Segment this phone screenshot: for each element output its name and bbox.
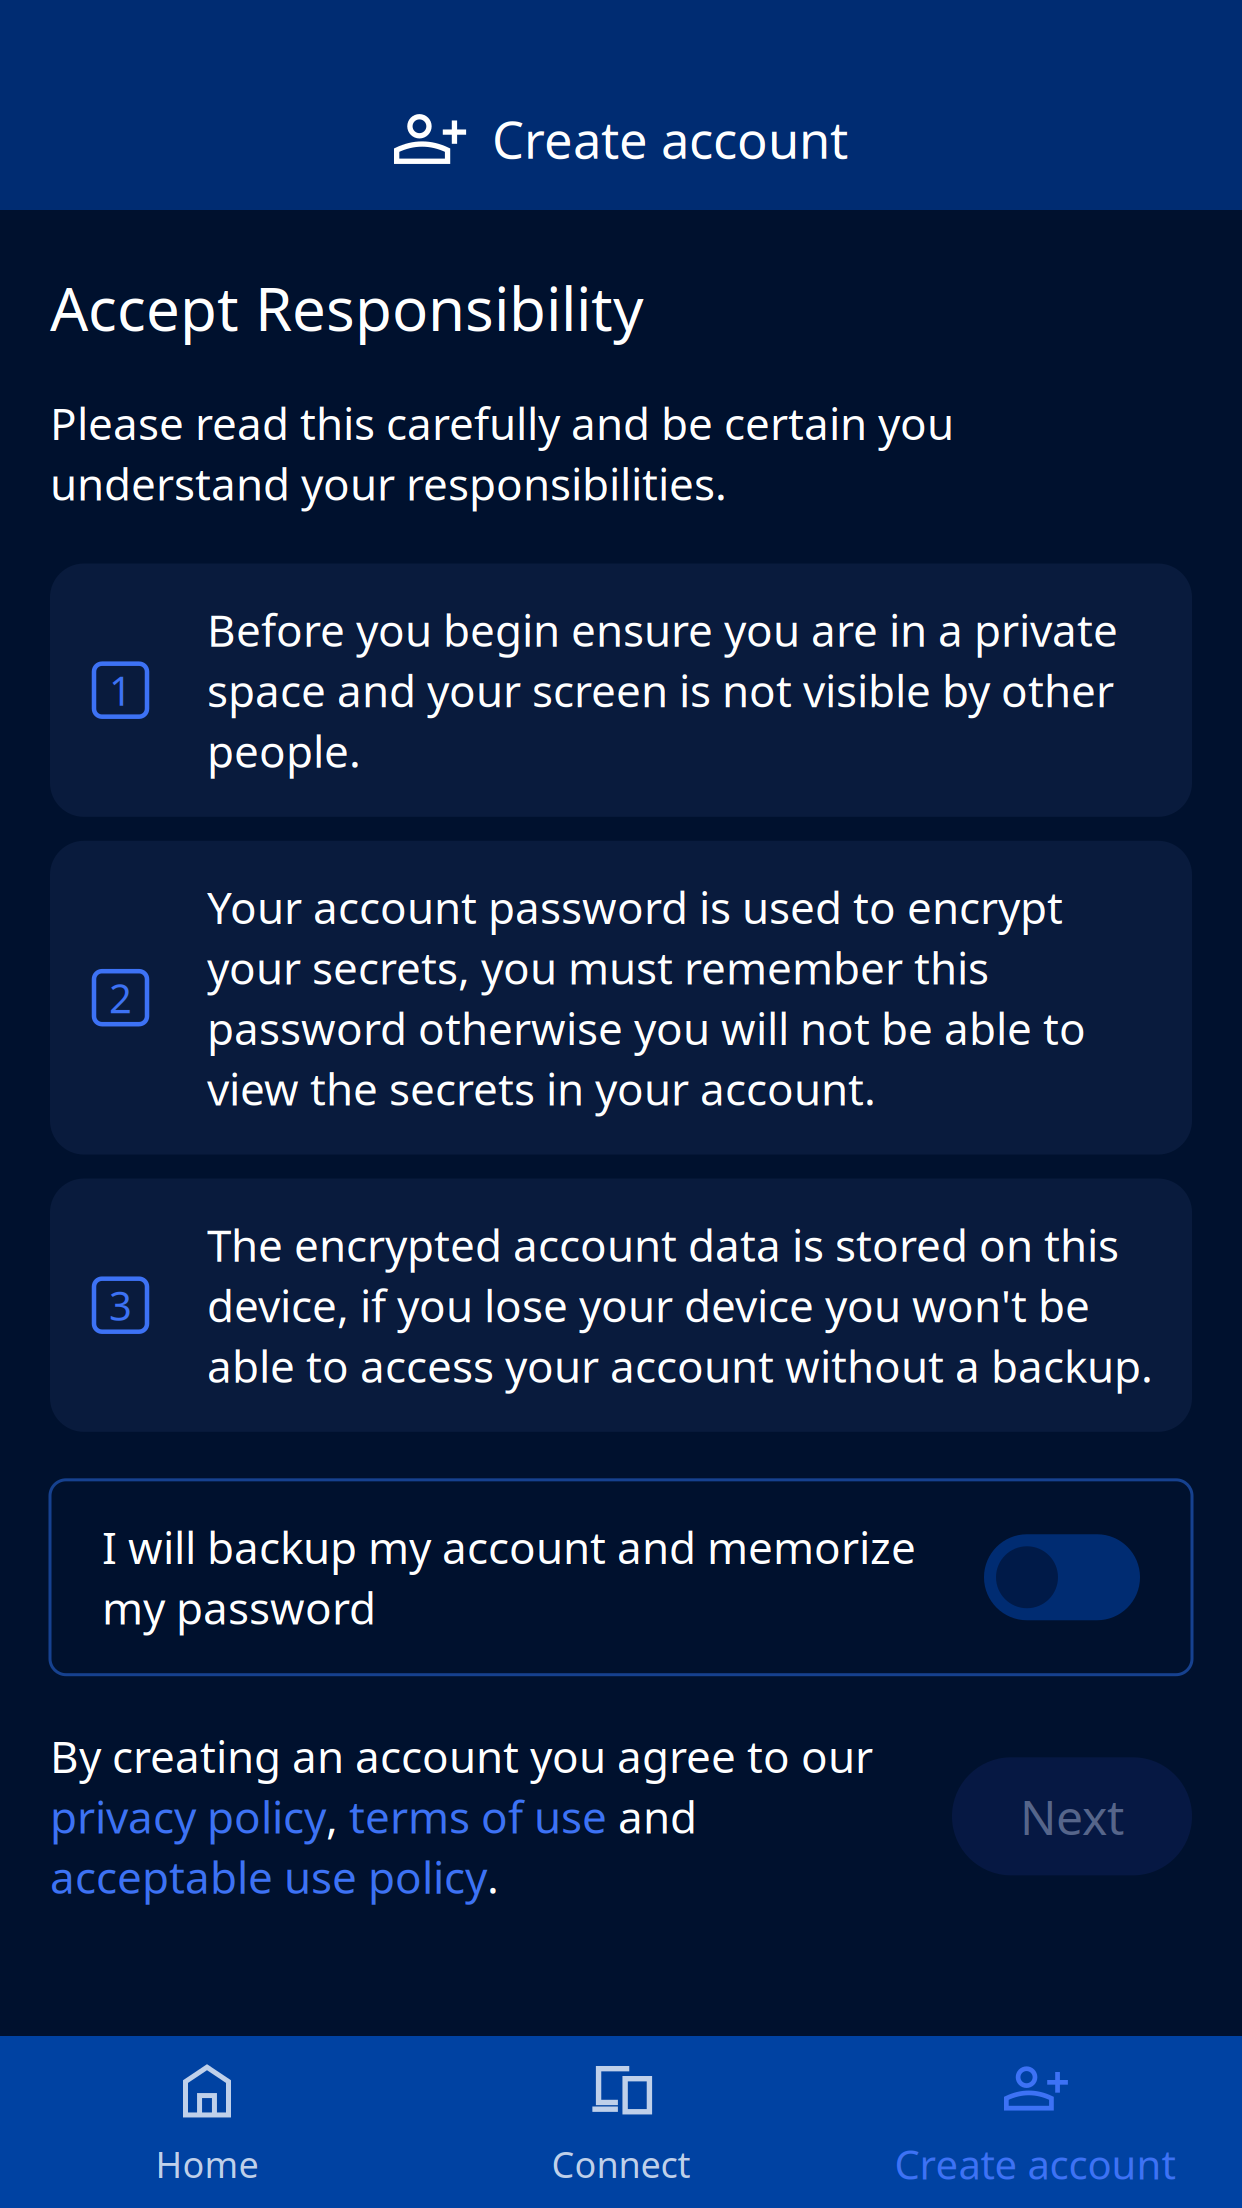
staticText: Connect — [551, 2140, 690, 2188]
button[interactable]: Home — [0, 2064, 414, 2188]
staticText: Create account — [492, 105, 848, 173]
staticText: Before you begin ensure you are in a pri… — [207, 600, 1118, 780]
staticText: Next — [1020, 1784, 1124, 1848]
button[interactable]: Create account — [828, 2061, 1242, 2190]
staticText: privacy policy — [50, 1787, 326, 1845]
staticText: . — [487, 1848, 499, 1906]
staticText: I will backup my account and memorize my… — [102, 1518, 916, 1637]
staticText: 3 — [109, 1279, 132, 1332]
staticText: acceptable use policy — [50, 1848, 487, 1906]
button[interactable]: Connect — [414, 2064, 828, 2188]
staticText: , — [326, 1787, 349, 1845]
button[interactable]: Create account — [0, 0, 1242, 210]
button[interactable]: Next — [952, 1757, 1192, 1875]
staticText: 2 — [109, 971, 132, 1024]
staticText: and — [607, 1787, 697, 1845]
staticText: Accept Responsibility — [50, 268, 644, 348]
staticText: Home — [155, 2140, 258, 2188]
button[interactable]: I will backup my account and memorize my… — [50, 1480, 1192, 1675]
staticText: Please read this carefully and be certai… — [50, 394, 954, 513]
staticText: The encrypted account data is stored on … — [207, 1215, 1153, 1395]
staticText: 1 — [109, 664, 132, 717]
staticText: Create account — [894, 2137, 1175, 2190]
staticText: Your account password is used to encrypt… — [207, 878, 1086, 1117]
staticText: terms of use — [349, 1787, 607, 1845]
staticText: By creating an account you agree to our — [50, 1727, 873, 1785]
